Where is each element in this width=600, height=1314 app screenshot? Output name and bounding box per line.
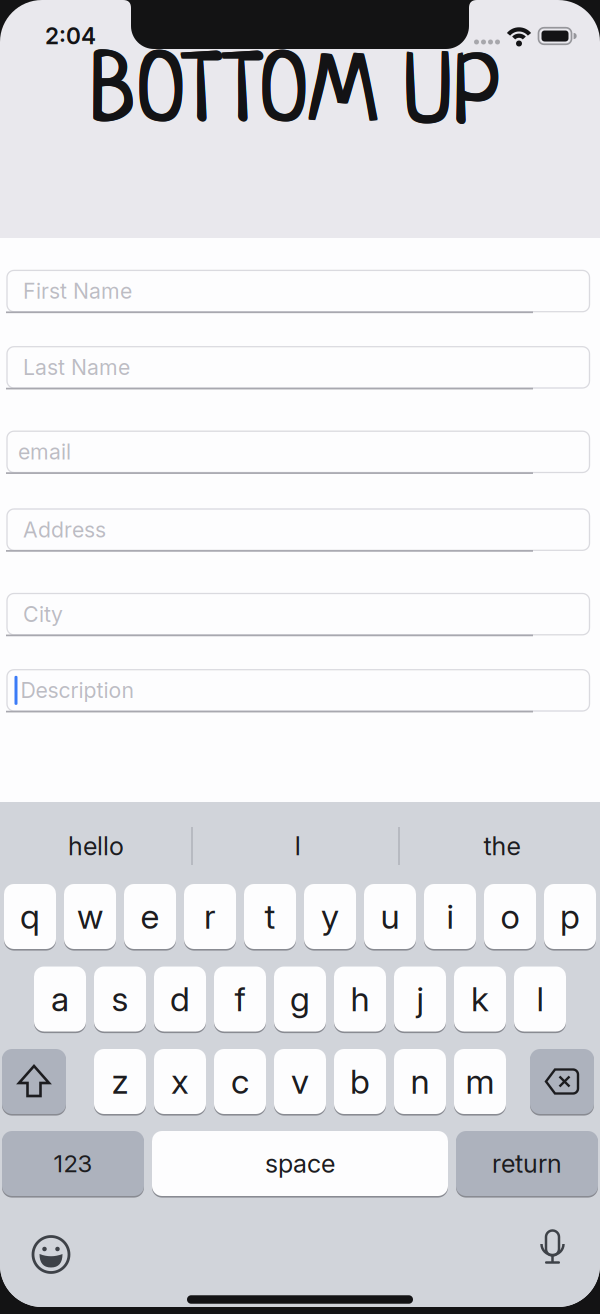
staticText: hello [68, 831, 124, 861]
staticText: k [471, 978, 489, 1019]
staticText: Last Name [23, 354, 130, 380]
button[interactable]: the [407, 811, 597, 881]
button[interactable]: f [214, 966, 266, 1032]
staticText: v [291, 1061, 309, 1102]
staticText: return [492, 1148, 562, 1179]
staticText: y [321, 896, 339, 937]
button[interactable]: w [64, 883, 116, 950]
button[interactable]: r [184, 883, 236, 950]
button[interactable]: c [214, 1048, 266, 1115]
button[interactable]: I [203, 811, 393, 881]
button[interactable]: n [394, 1048, 446, 1115]
staticText: q [20, 896, 40, 937]
staticText: Description [20, 677, 134, 703]
staticText: r [204, 896, 216, 937]
button[interactable]: space [152, 1130, 448, 1197]
button[interactable]: q [4, 883, 56, 950]
staticText: Address [23, 517, 106, 542]
button[interactable]: e [124, 883, 176, 950]
button[interactable]: p [544, 883, 596, 950]
button[interactable]: x [154, 1048, 206, 1115]
button[interactable]: v [274, 1048, 326, 1115]
button[interactable]: d [154, 966, 206, 1032]
staticText: z [111, 1061, 128, 1102]
staticText: BOTTOM UP [91, 46, 503, 146]
staticText: City [23, 601, 63, 627]
button[interactable]: h [334, 966, 386, 1032]
button[interactable] [530, 1048, 594, 1115]
staticText: s [111, 978, 128, 1019]
button[interactable]: z [94, 1048, 146, 1115]
staticText: t [264, 896, 275, 937]
staticText: f [234, 978, 245, 1019]
staticText: c [231, 1061, 249, 1102]
button[interactable]: i [424, 883, 476, 950]
button[interactable]: a [34, 966, 86, 1032]
button[interactable] [21, 1224, 81, 1284]
staticText: g [290, 978, 310, 1019]
staticText: j [416, 978, 423, 1019]
button[interactable]: email [7, 431, 589, 472]
staticText: w [77, 896, 103, 937]
staticText: h [350, 978, 369, 1019]
button[interactable]: 123 [2, 1130, 144, 1197]
staticText: First Name [23, 278, 132, 304]
staticText: the [483, 831, 520, 861]
staticText: BOTTOM UP [89, 46, 501, 146]
button[interactable]: First Name [7, 270, 589, 312]
button[interactable]: o [484, 883, 536, 950]
button[interactable] [2, 1048, 66, 1115]
staticText: i [446, 896, 453, 937]
button[interactable]: City [7, 593, 589, 635]
staticText: space [265, 1148, 335, 1179]
staticText: a [51, 978, 69, 1019]
button[interactable]: u [364, 883, 416, 950]
button[interactable]: t [244, 883, 296, 950]
button[interactable]: hello [1, 811, 191, 881]
staticText: m [465, 1061, 494, 1102]
button[interactable]: g [274, 966, 326, 1032]
button[interactable]: Address [7, 509, 589, 550]
button[interactable] [522, 1225, 582, 1285]
staticText: u [380, 896, 399, 937]
staticText: n [410, 1061, 429, 1102]
staticText: e [140, 896, 159, 937]
staticText: l [536, 978, 543, 1019]
button[interactable]: m [454, 1048, 506, 1115]
staticText: BOTTOM UP [89, 48, 501, 147]
button[interactable]: Description [7, 670, 589, 711]
staticText: 2:04 [45, 22, 96, 50]
button[interactable]: b [334, 1048, 386, 1115]
button[interactable]: Last Name [7, 347, 589, 388]
button[interactable]: k [454, 966, 506, 1032]
staticText: p [560, 896, 580, 937]
staticText: email [18, 439, 71, 465]
staticText: I [294, 831, 301, 861]
button[interactable]: y [304, 883, 356, 950]
button[interactable]: l [514, 966, 566, 1032]
staticText: x [171, 1061, 189, 1102]
button[interactable]: s [94, 966, 146, 1032]
staticText: 123 [53, 1149, 92, 1178]
staticText: d [170, 978, 190, 1019]
button[interactable]: return [456, 1130, 598, 1197]
staticText: o [500, 896, 519, 937]
button[interactable]: j [394, 966, 446, 1032]
staticText: b [350, 1061, 370, 1102]
staticText: BOTTOM UP [91, 48, 503, 147]
